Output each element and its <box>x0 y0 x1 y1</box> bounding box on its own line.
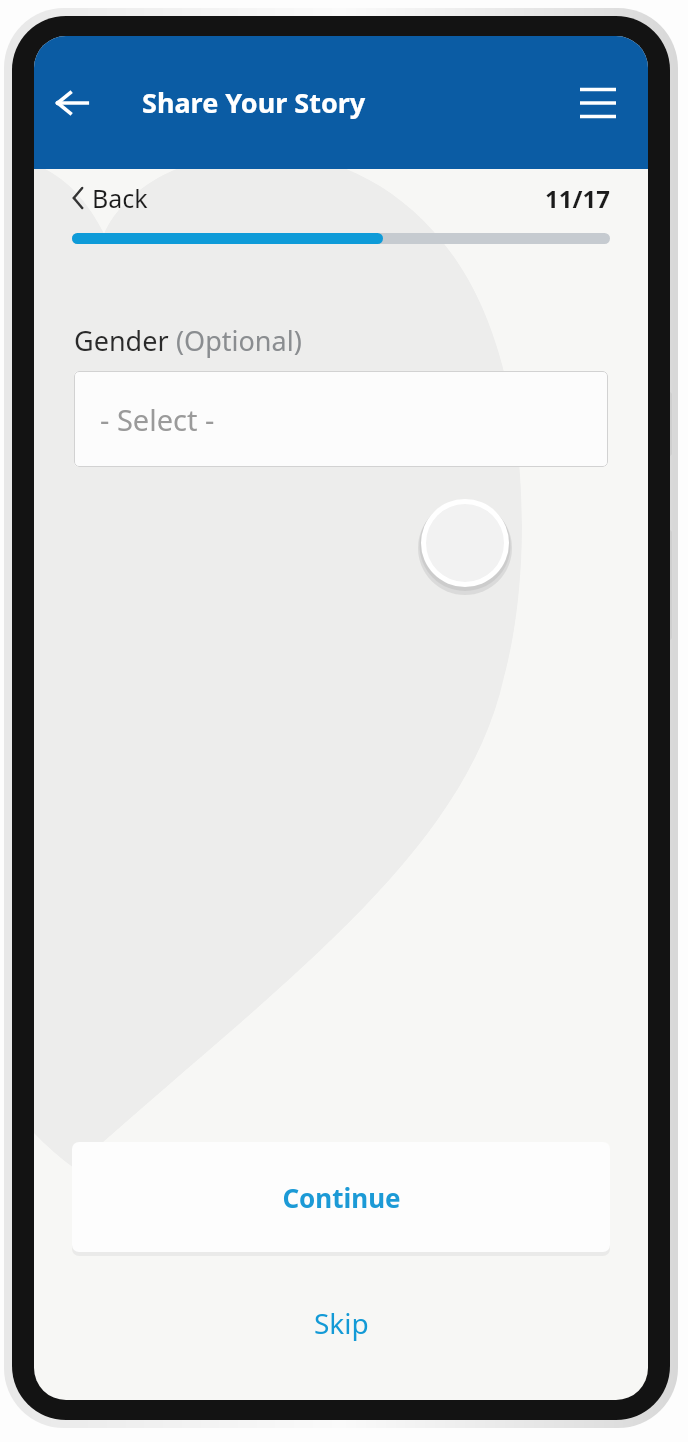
button[interactable]: Back <box>44 75 100 131</box>
staticText: Gender <box>74 322 176 359</box>
staticText: Back <box>92 181 148 215</box>
button[interactable]: Menu <box>570 75 626 131</box>
staticText: Share Your Story <box>142 84 366 121</box>
button[interactable]: Continue <box>72 1142 610 1252</box>
staticText: Skip <box>314 1304 369 1342</box>
staticText: Continue <box>282 1180 401 1215</box>
button[interactable]: Skip <box>34 1298 648 1348</box>
button[interactable]: Back <box>72 177 148 219</box>
staticText: (Optional) <box>176 322 302 359</box>
staticText: - Select - <box>100 400 215 439</box>
staticText: 11/17 <box>545 182 610 215</box>
button[interactable]: - Select - <box>74 371 608 467</box>
